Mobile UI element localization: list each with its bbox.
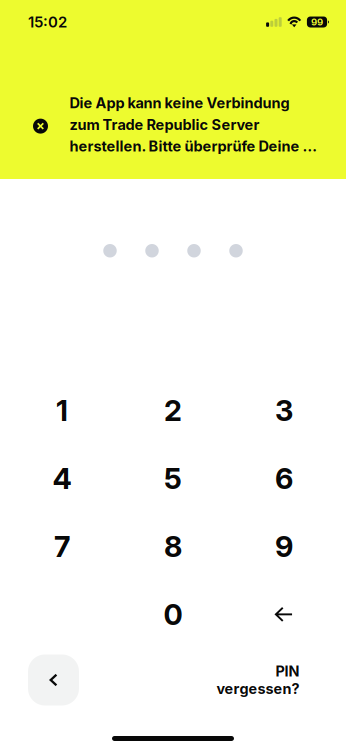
staticText: 9 [275,529,293,564]
button[interactable]: 2 [117,376,228,444]
button[interactable]: 6 [228,444,339,512]
staticText: 2 [164,393,182,428]
staticText: 6 [275,461,293,496]
staticText: 4 [52,461,71,496]
button[interactable]: 8 [117,512,228,580]
staticText: 99 [311,16,323,28]
staticText: 7 [54,529,70,564]
button[interactable]: 0 [117,580,228,648]
staticText: 3 [275,393,293,428]
staticText: vergessen? [216,680,299,697]
button[interactable]: 3 [228,376,339,444]
button[interactable]: Back [28,654,79,705]
button[interactable]: 5 [117,444,228,512]
staticText: 0 [163,597,182,632]
staticText: 1 [56,393,68,428]
staticText: 15:02 [28,13,67,31]
staticText: 5 [164,461,182,496]
button[interactable]: 9 [228,512,339,580]
button[interactable]: 4 [6,444,117,512]
button[interactable]: 1 [6,376,117,444]
staticText: 8 [164,529,182,564]
staticText: PIN [275,663,299,680]
button[interactable]: PIN [216,663,318,697]
staticText: Die App kann keine Verbindung zum Trade … [69,94,318,155]
button[interactable]: Delete [228,580,339,648]
button[interactable]: 7 [6,512,117,580]
